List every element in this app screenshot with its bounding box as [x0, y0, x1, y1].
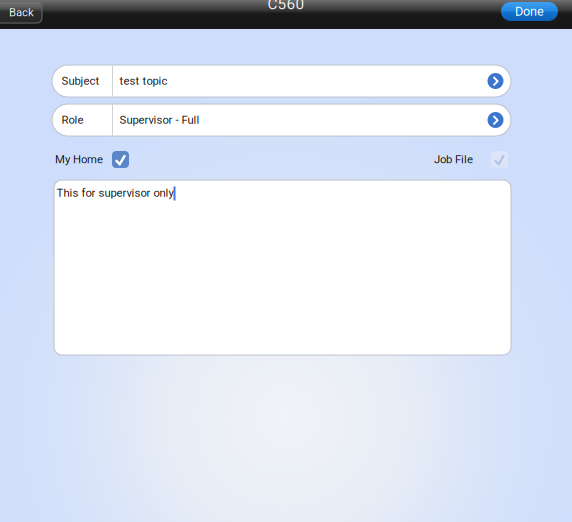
- staticText: C560: [267, 0, 304, 13]
- staticText: test topic: [119, 74, 167, 88]
- staticText: Subject: [61, 74, 99, 88]
- button[interactable]: Back: [0, 2, 42, 23]
- button[interactable]: Job File: [434, 151, 508, 168]
- button[interactable]: Role: [52, 104, 511, 136]
- button[interactable]: My Home: [55, 151, 129, 168]
- staticText: Role: [61, 113, 83, 127]
- staticText: Supervisor - Full: [119, 113, 199, 127]
- staticText: Back: [9, 6, 34, 19]
- button[interactable]: This for supervisor only: [54, 180, 511, 355]
- button[interactable]: Done: [501, 2, 558, 21]
- button[interactable]: Subject: [52, 65, 511, 97]
- staticText: Done: [515, 4, 544, 19]
- staticText: Job File: [434, 153, 473, 166]
- staticText: This for supervisor only: [56, 186, 173, 200]
- staticText: My Home: [55, 153, 103, 166]
